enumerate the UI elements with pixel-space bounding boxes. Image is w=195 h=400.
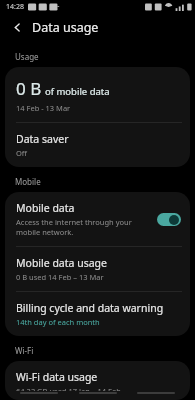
button[interactable]: Billing cycle and data warning	[5, 292, 190, 336]
staticText: Data saver	[16, 132, 69, 146]
button[interactable]: Back	[8, 18, 26, 36]
button[interactable]: Mobile data usage	[5, 247, 190, 291]
staticText: Wi-Fi data usage	[16, 370, 98, 384]
staticText: Usage	[15, 51, 39, 62]
button[interactable]: Mobile data	[5, 192, 190, 246]
staticText: Wi-Fi	[15, 345, 34, 356]
staticText: Mobile data usage	[16, 256, 107, 270]
staticText: Billing cycle and data warning	[16, 301, 164, 315]
staticText: 14 Feb - 13 Mar	[16, 103, 71, 113]
button[interactable]: Mobile data toggle	[157, 213, 181, 226]
staticText: 14th day of each month	[16, 317, 100, 327]
button[interactable]: 0 B	[5, 67, 190, 122]
staticText: 0 B used 14 Feb – 13 Mar	[16, 272, 104, 282]
button[interactable]: Data saver	[5, 123, 190, 167]
staticText: Access the internet through your mobile …	[16, 217, 149, 237]
staticText: Off	[16, 148, 28, 158]
staticText: Mobile data	[16, 201, 75, 215]
staticText: 14:28	[6, 2, 24, 12]
staticText: ···	[54, 2, 60, 12]
staticText: Data usage	[32, 19, 99, 36]
staticText: Mobile	[15, 176, 41, 187]
staticText: of mobile data	[45, 85, 110, 98]
staticText: 0 B	[16, 77, 42, 100]
staticText: 64.23 GB used 17 Jan – 14 Feb	[16, 386, 121, 391]
button[interactable]: Wi-Fi data usage	[5, 361, 190, 400]
